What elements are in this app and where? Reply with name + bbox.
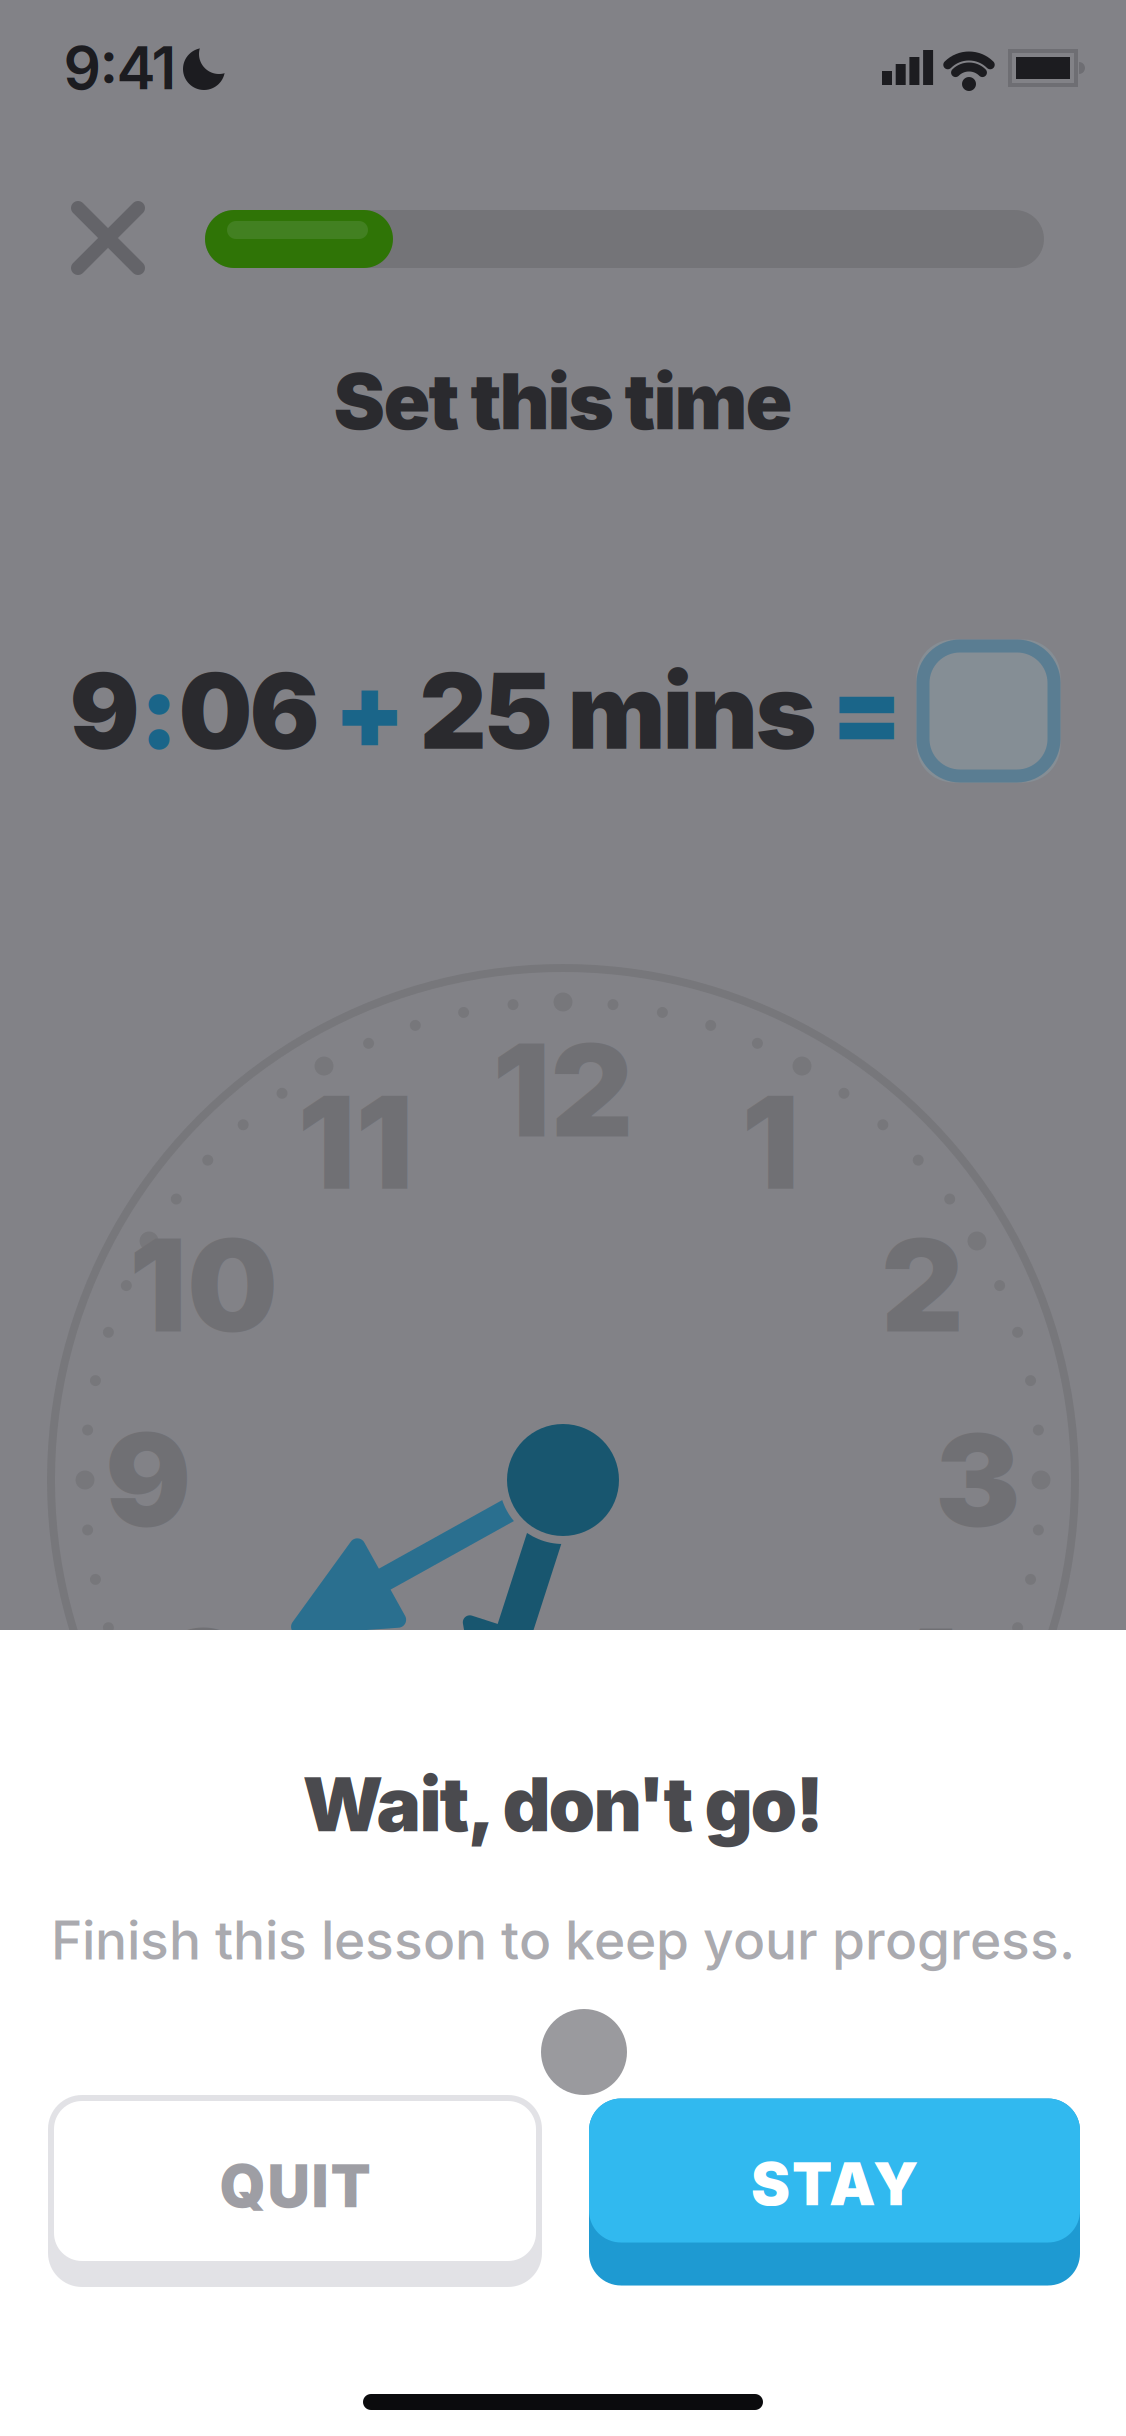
- staticText: 8: [160, 1599, 247, 1750]
- staticText: 7: [317, 1742, 393, 1893]
- staticText: STAY: [751, 2149, 918, 2219]
- staticText: +: [333, 650, 405, 772]
- staticText: 2: [881, 1209, 964, 1360]
- staticText: 25 mins: [419, 650, 816, 772]
- staticText: 06: [178, 650, 319, 772]
- button[interactable]: Close: [60, 190, 156, 286]
- staticText: 12: [492, 1014, 633, 1165]
- button[interactable]: QUIT: [48, 2095, 542, 2287]
- staticText: 11: [297, 1067, 413, 1218]
- staticText: 6: [520, 1794, 606, 1945]
- staticText: =: [830, 650, 902, 772]
- staticText: 9: [69, 650, 139, 772]
- staticText: 10: [129, 1209, 278, 1360]
- staticText: 9: [105, 1404, 191, 1555]
- staticText: Wait, don't go!: [302, 1760, 823, 1848]
- staticText: 9:41: [63, 33, 176, 103]
- staticText: QUIT: [219, 2151, 370, 2221]
- staticText: Set this time: [333, 355, 792, 447]
- staticText: 5: [728, 1742, 813, 1893]
- button[interactable]: STAY: [589, 2098, 1080, 2285]
- staticText: :: [139, 650, 178, 772]
- staticText: 1: [741, 1067, 799, 1218]
- staticText: 3: [935, 1404, 1021, 1555]
- staticText: Finish this lesson to keep your progress…: [51, 1908, 1075, 1971]
- staticText: 4: [877, 1599, 967, 1750]
